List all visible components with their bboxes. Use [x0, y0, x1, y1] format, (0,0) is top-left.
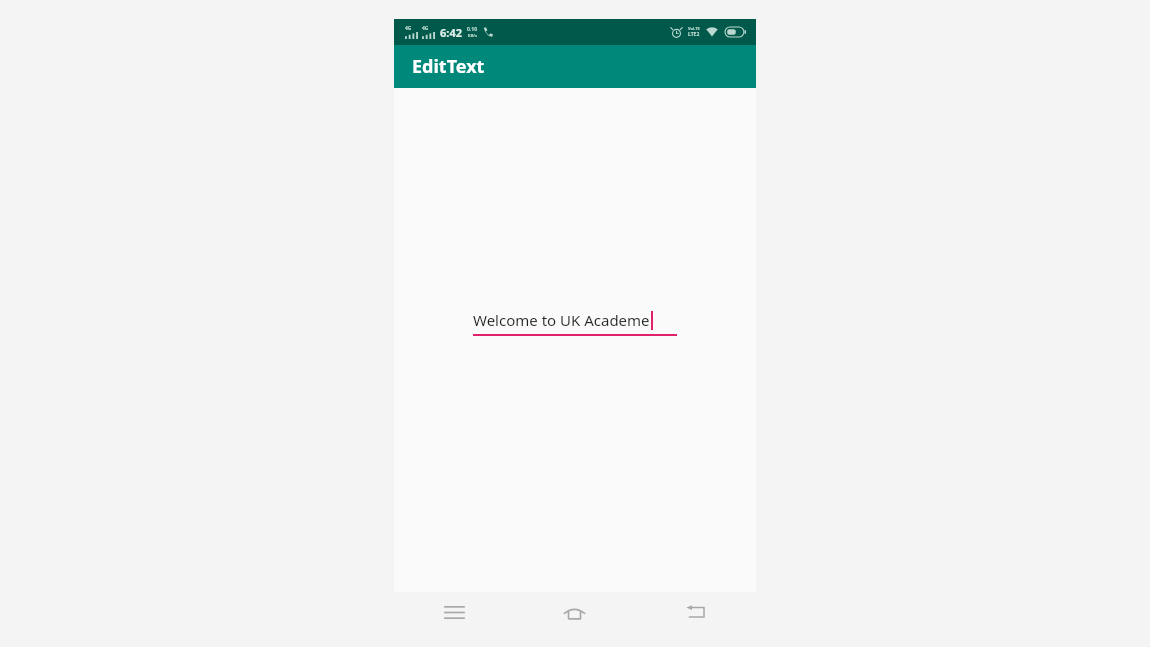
- button[interactable]: Home: [514, 592, 635, 632]
- button[interactable]: Recent apps: [394, 592, 514, 632]
- staticText: KB/s: [468, 33, 477, 38]
- staticText: EditText: [412, 54, 485, 79]
- staticText: VoLTE: [688, 26, 700, 31]
- button[interactable]: Welcome to UK Academe: [473, 310, 677, 336]
- staticText: 4G: [405, 25, 412, 32]
- staticText: 6:42: [440, 25, 462, 40]
- staticText: Welcome to UK Academe: [473, 310, 650, 330]
- staticText: 0.10: [467, 26, 477, 33]
- staticText: 4G: [422, 25, 429, 32]
- button[interactable]: Back: [635, 592, 756, 632]
- staticText: LTE2: [688, 31, 700, 38]
